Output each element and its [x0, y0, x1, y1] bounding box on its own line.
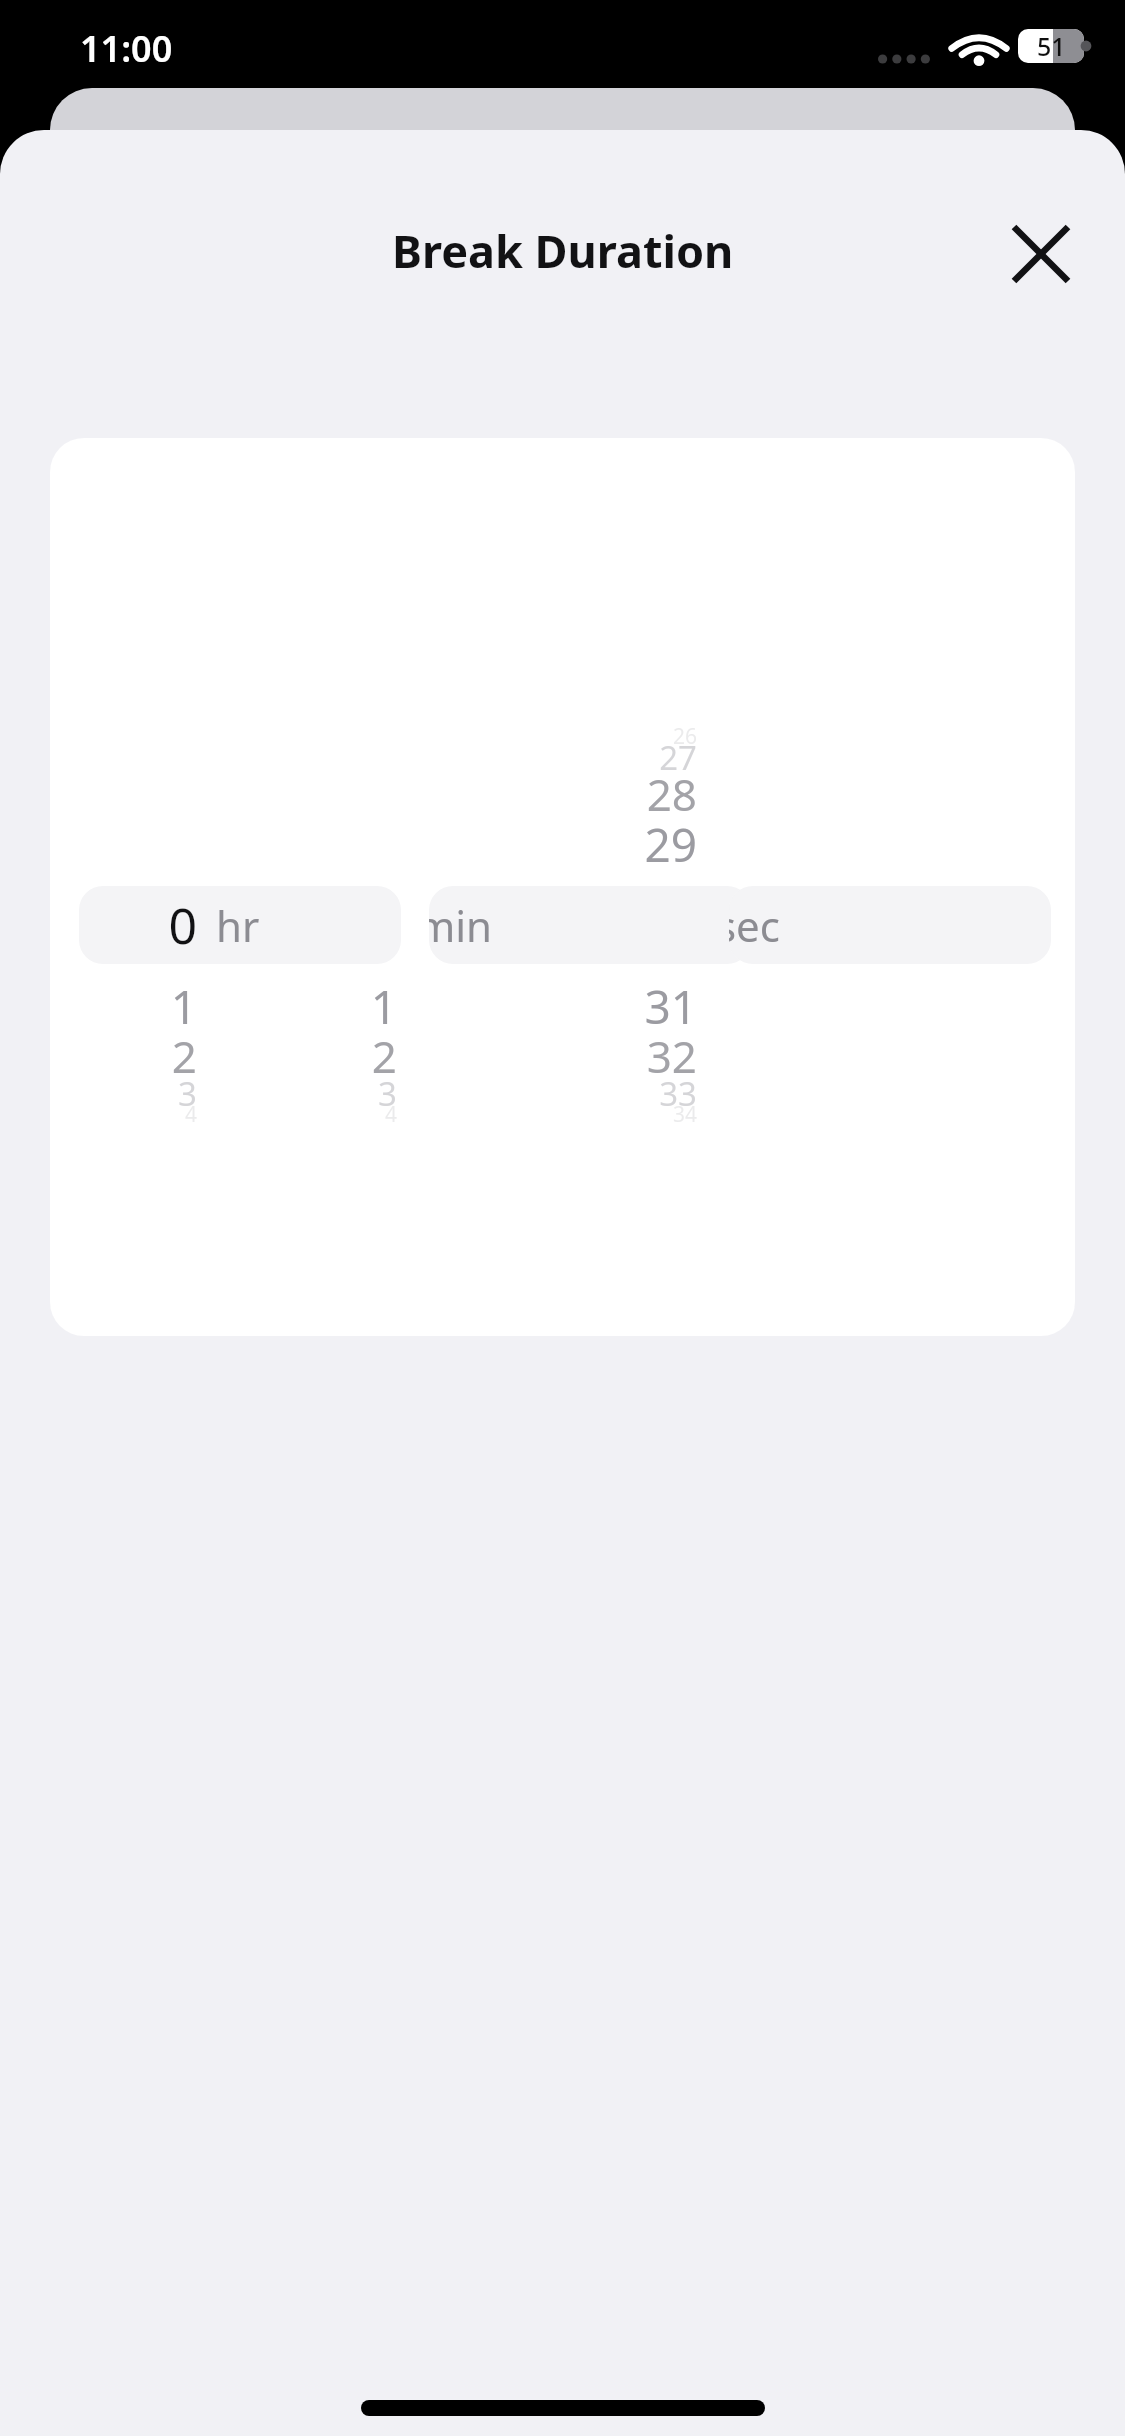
- staticText: sec: [729, 897, 780, 954]
- staticText: 27: [477, 735, 697, 780]
- staticText: 0: [79, 891, 197, 959]
- staticText: 32: [477, 1026, 697, 1086]
- button[interactable]: 0: [429, 886, 751, 964]
- staticText: 11:00: [80, 24, 173, 73]
- staticText: 34: [477, 1100, 697, 1129]
- staticText: 1: [177, 975, 397, 1038]
- staticText: 4: [50, 1100, 197, 1129]
- staticText: hr: [216, 897, 260, 954]
- staticText: Break Duration: [392, 220, 734, 281]
- staticText: 2: [177, 1026, 397, 1086]
- staticText: 26: [477, 722, 697, 751]
- button[interactable]: 0: [79, 886, 401, 964]
- staticText: min: [429, 897, 493, 954]
- staticText: 51: [1037, 29, 1066, 63]
- button[interactable]: 30: [729, 886, 1051, 964]
- staticText: 31: [477, 975, 697, 1038]
- staticText: 3: [177, 1071, 397, 1116]
- staticText: 1: [50, 975, 197, 1038]
- staticText: 3: [50, 1071, 197, 1116]
- staticText: 2: [50, 1026, 197, 1086]
- staticText: 29: [477, 813, 697, 876]
- staticText: 4: [177, 1100, 397, 1129]
- staticText: 28: [477, 764, 697, 824]
- button[interactable]: Close: [991, 204, 1091, 304]
- staticText: 33: [477, 1071, 697, 1116]
